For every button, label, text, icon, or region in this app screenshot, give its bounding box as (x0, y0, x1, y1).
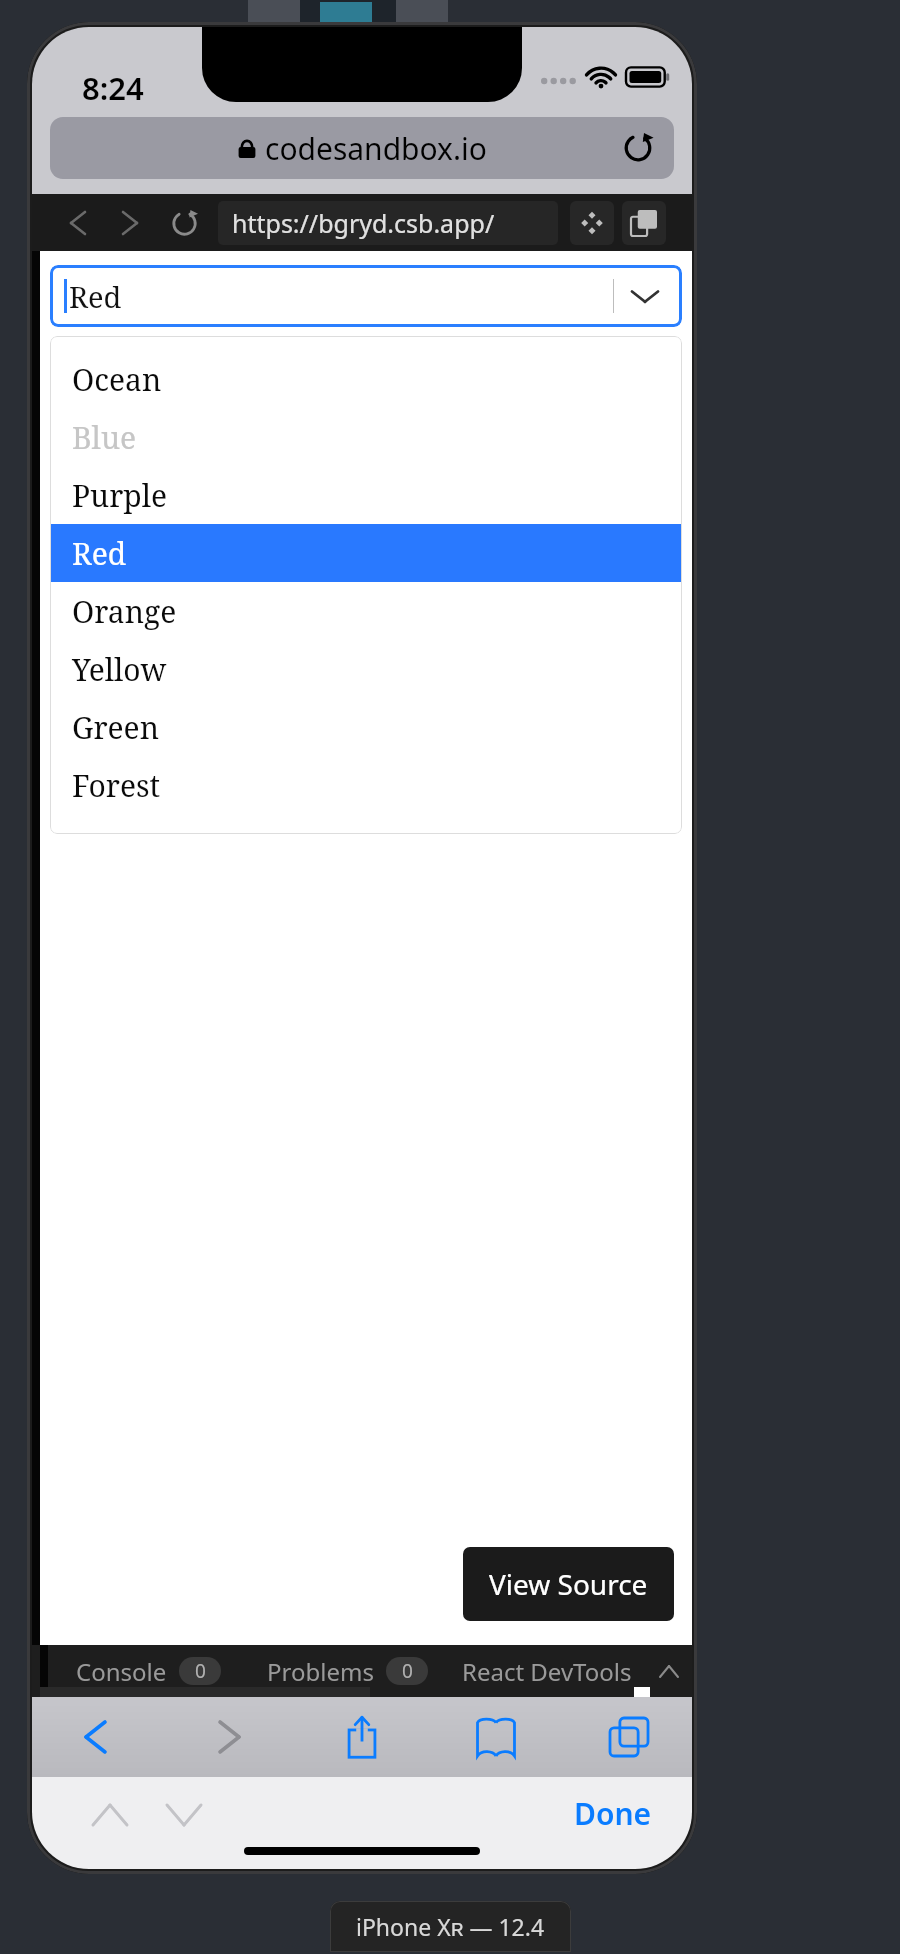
button[interactable]: Green (50, 698, 682, 756)
staticText: Green (72, 707, 159, 748)
button[interactable]: Reload (618, 128, 658, 168)
staticText: Done (574, 1793, 652, 1834)
button[interactable]: Purple (50, 466, 682, 524)
button[interactable]: Forward (110, 203, 150, 243)
staticText: 8:24 (82, 67, 144, 109)
button[interactable]: Next field (156, 1787, 212, 1843)
button[interactable]: Ocean (50, 350, 682, 408)
button[interactable]: Back (58, 203, 98, 243)
button[interactable]: Share (333, 1708, 391, 1766)
button[interactable]: Orange (50, 582, 682, 640)
button[interactable]: Split view (570, 201, 614, 245)
button[interactable]: Yellow (50, 640, 682, 698)
staticText: codesandbox.io (265, 128, 487, 169)
button[interactable]: https://bgryd.csb.app/ (218, 201, 558, 245)
button[interactable]: Forward (200, 1708, 258, 1766)
button[interactable]: Blue (50, 408, 682, 466)
staticText: Forest (72, 765, 161, 806)
staticText: Console (76, 1655, 167, 1688)
button[interactable]: Bookmarks (467, 1708, 525, 1766)
staticText: View Source (489, 1565, 648, 1603)
staticText: Red (72, 533, 127, 574)
button[interactable]: Previous field (82, 1787, 138, 1843)
staticText: Purple (72, 475, 168, 516)
button[interactable]: Refresh (164, 203, 204, 243)
button[interactable]: Red (50, 524, 682, 582)
button[interactable]: Open dropdown (614, 265, 676, 327)
staticText: Red (69, 277, 122, 316)
button[interactable]: Expand panel (646, 1645, 692, 1697)
button[interactable]: Problems (248, 1645, 447, 1697)
button[interactable]: Red (50, 265, 682, 327)
button[interactable]: Done (574, 1793, 652, 1834)
button[interactable]: codesandbox.io (50, 117, 674, 179)
staticText: 0 (195, 1658, 206, 1684)
staticText: Yellow (72, 649, 167, 690)
staticText: React DevTools (462, 1655, 632, 1688)
button[interactable]: Tabs (600, 1708, 658, 1766)
button[interactable]: React DevTools (447, 1645, 646, 1697)
staticText: Ocean (72, 359, 162, 400)
staticText: Blue (72, 417, 137, 458)
staticText: Orange (72, 591, 177, 632)
staticText: https://bgryd.csb.app/ (232, 206, 495, 240)
button[interactable]: View Source (463, 1547, 674, 1621)
button[interactable]: Forest (50, 756, 682, 814)
button[interactable]: Back (66, 1708, 124, 1766)
staticText: 0 (402, 1658, 413, 1684)
button[interactable]: Console (48, 1645, 248, 1697)
staticText: iPhone Xʀ — 12.4 (356, 1911, 545, 1942)
staticText: Problems (267, 1655, 374, 1688)
button[interactable]: Tabs (622, 201, 666, 245)
